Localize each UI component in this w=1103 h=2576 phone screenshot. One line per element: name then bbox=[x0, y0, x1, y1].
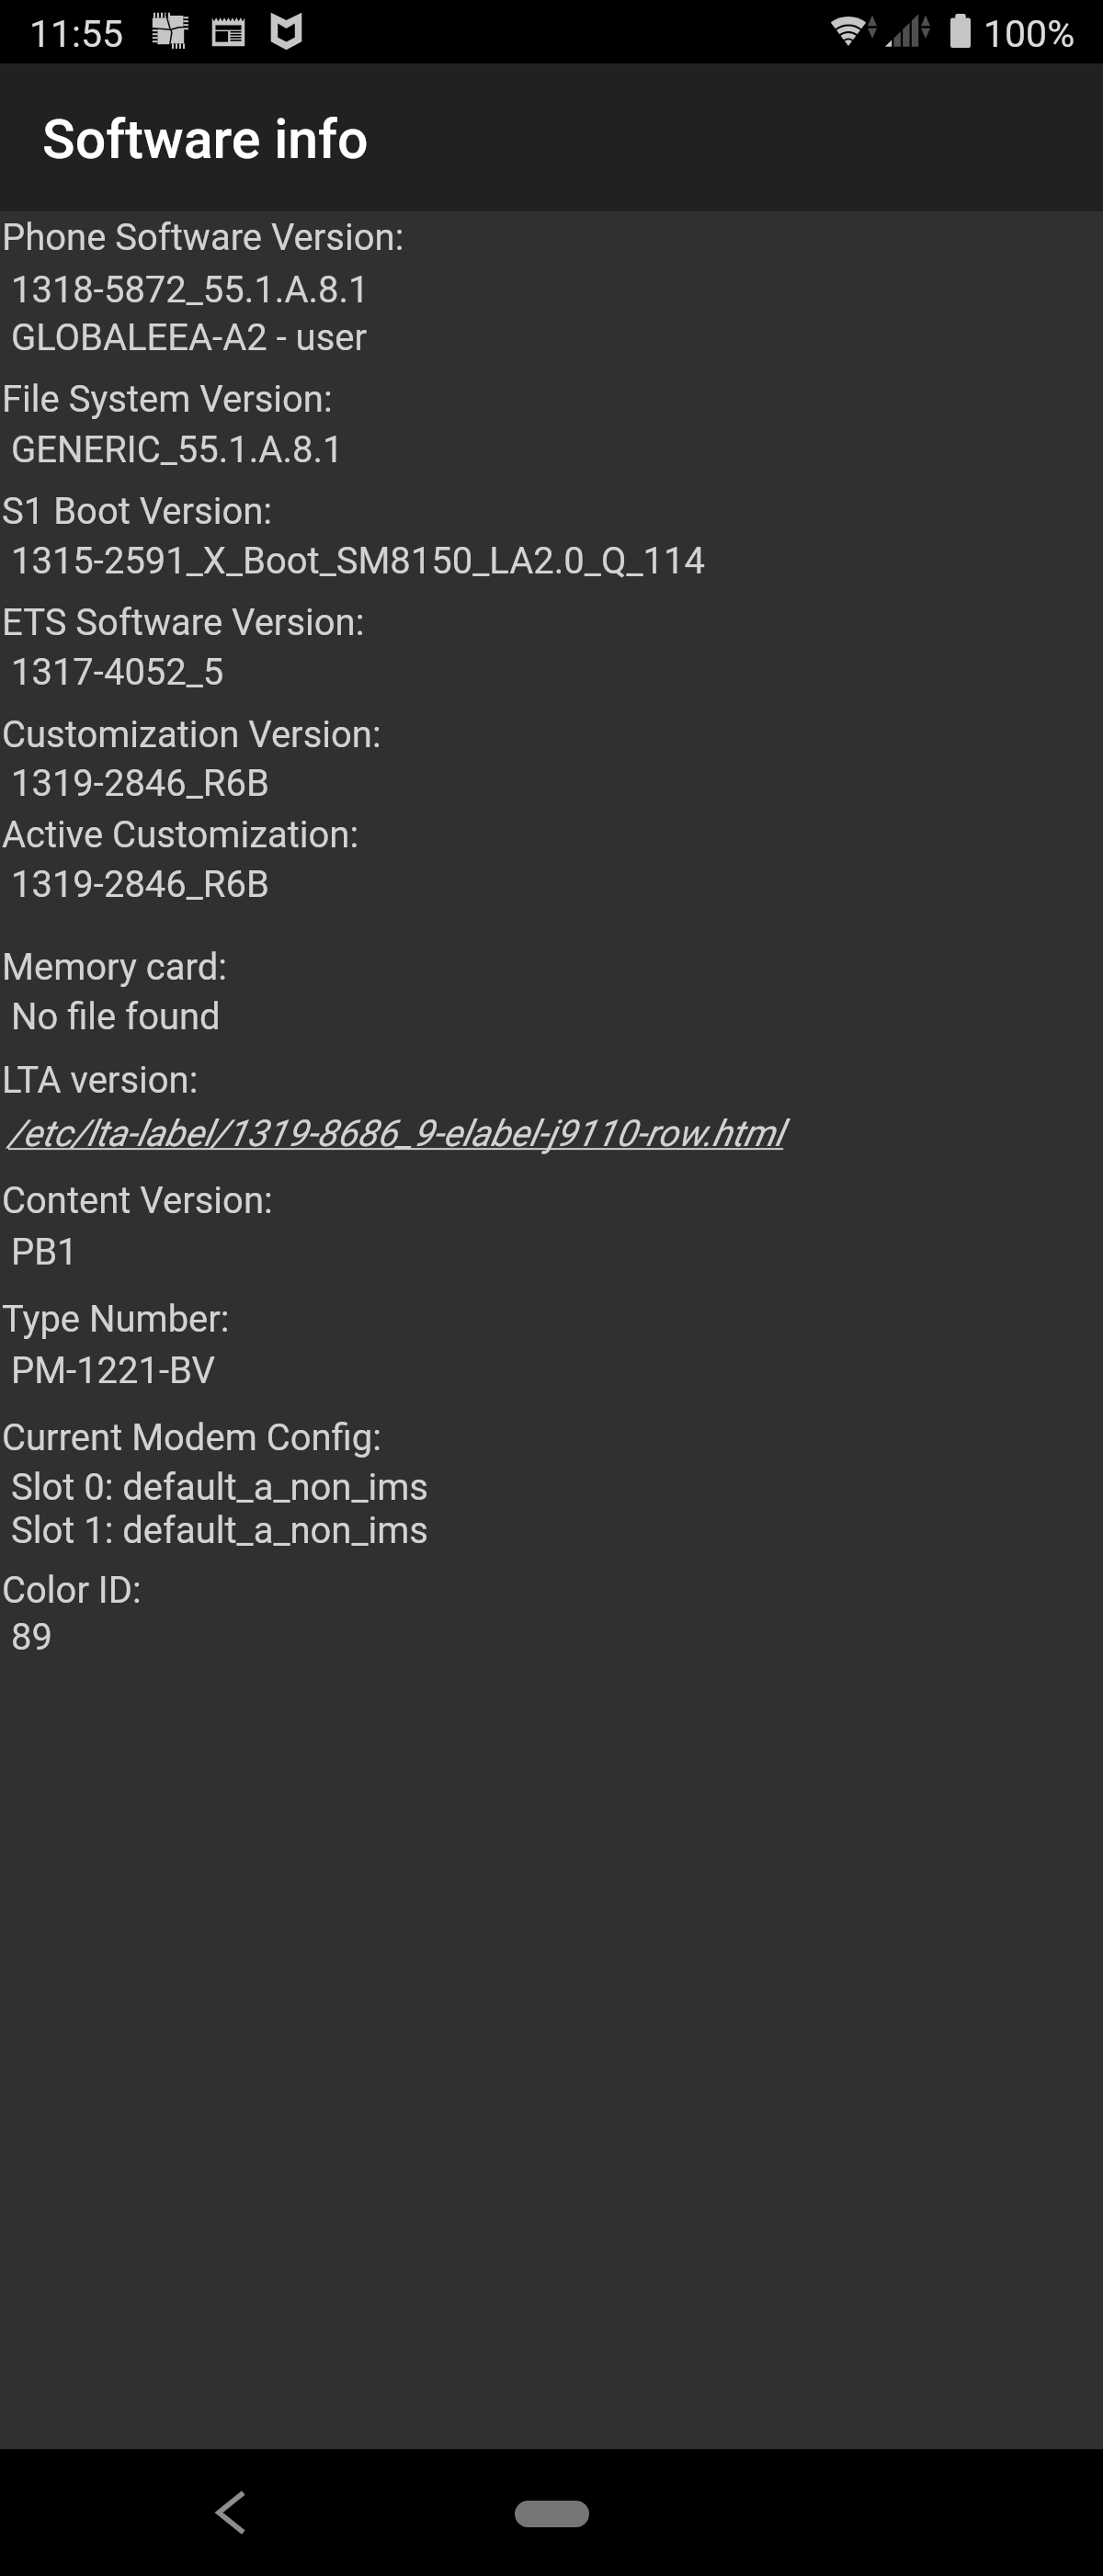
staticText: GLOBALEEA-A2 - user bbox=[2, 316, 368, 359]
staticText: Current Modem Config: bbox=[2, 1416, 381, 1459]
staticText: LTA version: bbox=[2, 1059, 199, 1102]
staticText: PB1 bbox=[2, 1231, 78, 1274]
staticText: Customization Version: bbox=[2, 713, 381, 756]
staticText: GENERIC_55.1.A.8.1 bbox=[2, 428, 344, 471]
staticText: Type Number: bbox=[2, 1298, 230, 1341]
staticText: 89 bbox=[2, 1616, 52, 1659]
staticText: Phone Software Version: bbox=[2, 216, 404, 259]
staticText: Slot 0: default_a_non_ims bbox=[2, 1466, 428, 1509]
staticText: File System Version: bbox=[2, 378, 333, 421]
staticText: Color ID: bbox=[2, 1569, 142, 1612]
staticText: Active Customization: bbox=[2, 813, 359, 857]
staticText: PM-1221-BV bbox=[2, 1349, 216, 1392]
staticText: Content Version: bbox=[2, 1179, 273, 1222]
staticText: Memory card: bbox=[2, 946, 227, 989]
staticText: 1319-2846_R6B bbox=[2, 762, 269, 805]
staticText: Slot 1: default_a_non_ims bbox=[2, 1509, 428, 1552]
button[interactable]: Back bbox=[175, 2457, 285, 2568]
staticText: 1315-2591_X_Boot_SM8150_LA2.0_Q_114 bbox=[2, 539, 705, 583]
staticText: ETS Software Version: bbox=[2, 601, 365, 644]
staticText: 1317-4052_5 bbox=[2, 651, 224, 694]
staticText: 100% bbox=[984, 12, 1075, 56]
staticText: 11:55 bbox=[29, 12, 124, 56]
button[interactable]: Home bbox=[478, 2472, 625, 2555]
staticText: 1319-2846_R6B bbox=[2, 863, 269, 906]
staticText: No file found bbox=[2, 995, 221, 1038]
staticText: /etc/lta-label/1319-8686_9-elabel-j9110-… bbox=[8, 1112, 784, 1155]
staticText: Software info bbox=[42, 108, 369, 171]
staticText: 1318-5872_55.1.A.8.1 bbox=[2, 268, 370, 312]
staticText: S1 Boot Version: bbox=[2, 490, 273, 533]
